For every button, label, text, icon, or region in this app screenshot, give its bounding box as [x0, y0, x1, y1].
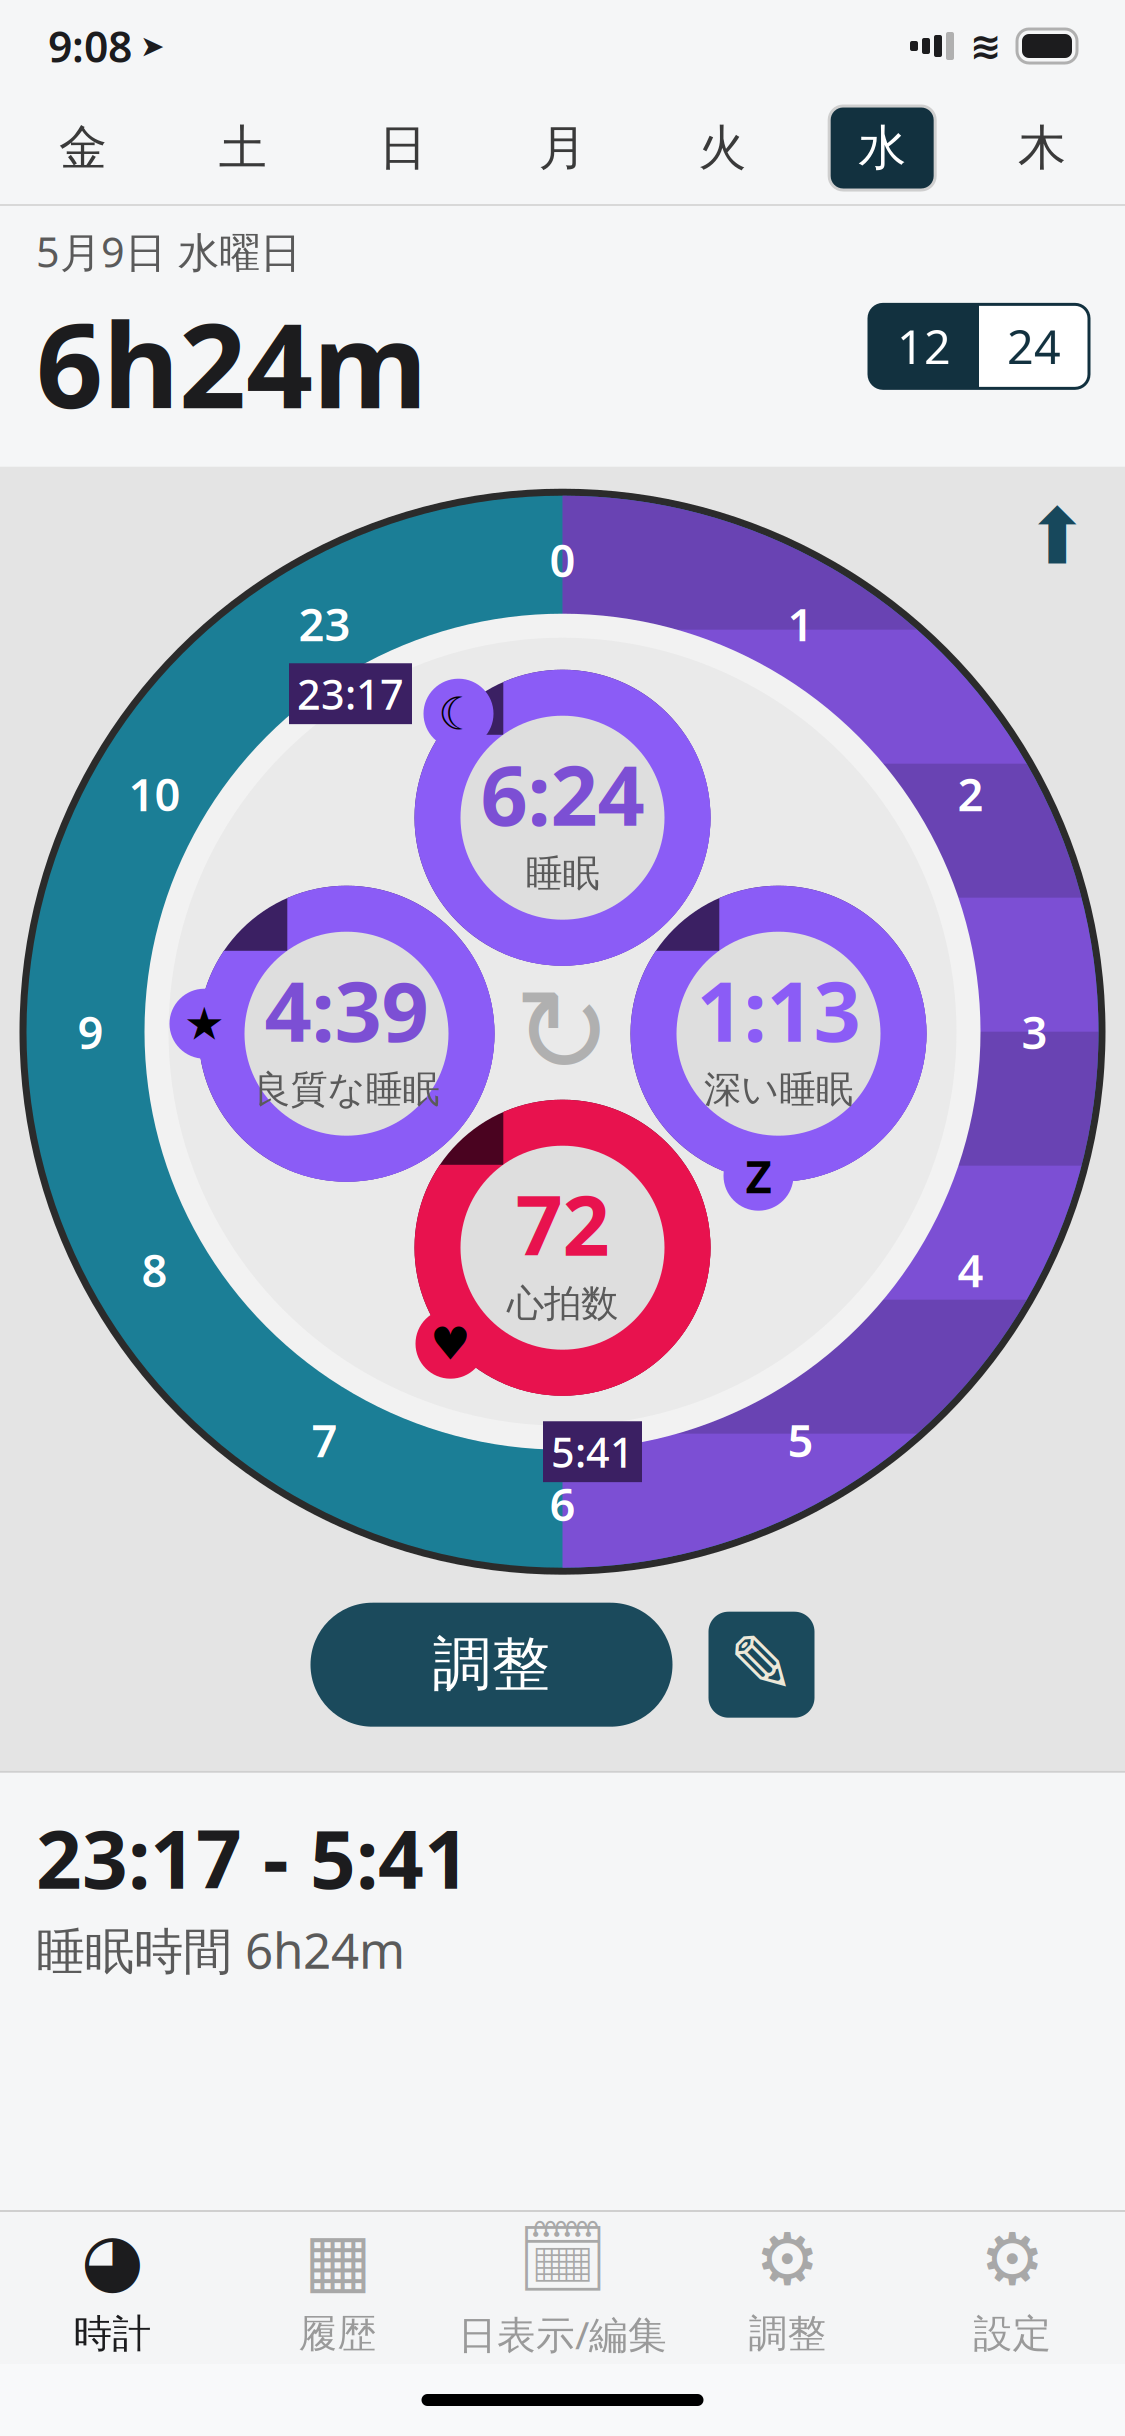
button[interactable]: 日 [350, 106, 456, 190]
staticText: 1 [787, 594, 813, 654]
button[interactable]: 🗓 [450, 2212, 675, 2364]
staticText: 2 [957, 764, 983, 824]
staticText: 24 [1007, 315, 1061, 377]
staticText: 調整 [748, 2310, 826, 2358]
staticText: ↻ [513, 965, 611, 1098]
staticText: 23 [298, 594, 350, 654]
staticText: 心拍数 [507, 1281, 618, 1327]
staticText: 良質な睡眠 [253, 1067, 439, 1113]
staticText: 5:41 [551, 1424, 634, 1479]
staticText: 履歴 [298, 2310, 376, 2358]
button[interactable]: ⚙ [900, 2212, 1125, 2364]
staticText: ☾ [438, 688, 479, 739]
staticText: 🗓 [517, 2216, 608, 2298]
button[interactable]: 火 [669, 106, 775, 190]
staticText: ★ [184, 998, 225, 1049]
staticText: 12 [897, 315, 951, 377]
button[interactable]: 月 [509, 106, 615, 190]
button[interactable]: Share [1009, 489, 1105, 585]
staticText: 3 [1021, 1002, 1047, 1062]
button[interactable]: ⚙ [675, 2212, 900, 2364]
staticText: 5 [787, 1410, 813, 1470]
staticText: ⬆ [1025, 493, 1090, 581]
staticText: ⚙ [980, 2218, 1045, 2300]
staticText: 5月9日 水曜日 [36, 224, 301, 279]
staticText: 睡眠 [525, 851, 599, 897]
staticText: 土 [219, 118, 267, 177]
staticText: ➤ [140, 29, 165, 63]
staticText: 日 [379, 118, 427, 177]
button[interactable]: ◕ [0, 2212, 225, 2364]
staticText: 月 [538, 118, 586, 177]
staticText: ✎ [728, 1619, 795, 1710]
staticText: ▦ [303, 2218, 371, 2300]
button[interactable]: ▦ [225, 2212, 450, 2364]
staticText: ≋ [970, 25, 1001, 67]
button[interactable]: Edit [708, 1612, 814, 1718]
staticText: 6 [549, 1474, 575, 1534]
staticText: 72 [515, 1169, 609, 1279]
button[interactable]: 調整 [310, 1603, 672, 1727]
staticText: 金 [59, 118, 107, 177]
button[interactable]: 12 [869, 304, 979, 388]
staticText: 水 [858, 118, 906, 177]
staticText: Z [745, 1146, 771, 1206]
staticText: 10 [128, 764, 180, 824]
button[interactable]: 24 [979, 304, 1089, 388]
staticText: 6:24 [480, 739, 644, 849]
staticText: 9 [77, 1002, 103, 1062]
staticText: ⚙ [755, 2218, 820, 2300]
staticText: 7 [311, 1410, 337, 1470]
staticText: 深い睡眠 [704, 1067, 853, 1113]
staticText: ♥ [430, 1318, 471, 1369]
staticText: 0 [549, 530, 575, 590]
staticText: 日表示/編集 [458, 2308, 667, 2360]
staticText: 23:17 [297, 666, 404, 721]
staticText: 9:08 [48, 18, 132, 74]
staticText: 火 [698, 118, 746, 177]
staticText: 時計 [73, 2310, 151, 2358]
staticText: ◕ [81, 2218, 144, 2300]
staticText: 4:39 [264, 955, 428, 1065]
staticText: 8 [141, 1240, 167, 1300]
staticText: 設定 [973, 2310, 1051, 2358]
staticText: 調整 [432, 1629, 550, 1701]
staticText: 睡眠時間 6h24m [36, 1917, 405, 1982]
button[interactable]: 金 [30, 106, 136, 190]
button[interactable]: 水 [829, 106, 935, 190]
staticText: 木 [1018, 118, 1066, 177]
staticText: 6h24m [36, 285, 427, 441]
button[interactable]: 木 [989, 106, 1095, 190]
staticText: 23:17 - 5:41 [36, 1805, 470, 1911]
staticText: 1:13 [696, 955, 860, 1065]
staticText: 4 [957, 1240, 983, 1300]
button[interactable]: 土 [190, 106, 296, 190]
